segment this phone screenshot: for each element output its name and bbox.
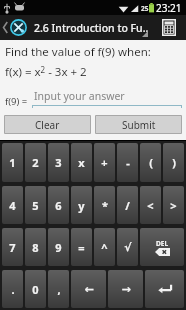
- button[interactable]: >: [163, 186, 184, 224]
- staticText: f(x) = x2 - 3x + 2: [5, 64, 87, 80]
- staticText: ,: [57, 282, 61, 297]
- button[interactable]: 0: [25, 270, 46, 308]
- button[interactable]: ←: [71, 270, 106, 308]
- staticText: ←: [84, 283, 94, 296]
- staticText: 2: [32, 155, 39, 170]
- staticText: *: [102, 198, 108, 213]
- button[interactable]: y: [71, 186, 92, 224]
- button[interactable]: .: [2, 270, 23, 308]
- staticText: /: [125, 198, 130, 213]
- button[interactable]: Submit: [96, 116, 181, 133]
- button[interactable]: 2.6 Introduction to Fu..: [30, 15, 152, 40]
- staticText: 25: [141, 4, 149, 13]
- button[interactable]: Delete: [140, 228, 184, 266]
- staticText: <: [147, 198, 154, 213]
- button[interactable]: →: [108, 270, 143, 308]
- staticText: 0: [32, 282, 39, 297]
- staticText: Input your answer: [34, 89, 125, 103]
- button[interactable]: -: [117, 143, 138, 182]
- button[interactable]: Clear: [5, 116, 90, 133]
- staticText: +: [101, 155, 108, 170]
- button[interactable]: /: [117, 186, 138, 224]
- button[interactable]: <: [140, 186, 161, 224]
- button[interactable]: 1: [2, 143, 23, 182]
- button[interactable]: +: [94, 143, 115, 182]
- staticText: Submit: [122, 118, 156, 132]
- staticText: 4: [9, 198, 16, 213]
- button[interactable]: 7: [2, 228, 23, 266]
- button[interactable]: ^: [94, 228, 115, 266]
- button[interactable]: 5: [25, 186, 46, 224]
- button[interactable]: 2: [25, 143, 46, 182]
- staticText: y: [78, 198, 85, 213]
- staticText: Find the value of f(9) when:: [5, 44, 151, 60]
- button[interactable]: (: [140, 143, 161, 182]
- staticText: -: [126, 155, 130, 170]
- button[interactable]: 6: [48, 186, 69, 224]
- staticText: (: [149, 155, 153, 170]
- staticText: f(9) =: [5, 95, 28, 108]
- staticText: 1: [9, 155, 16, 170]
- staticText: x: [78, 155, 85, 170]
- button[interactable]: Enter: [145, 270, 184, 308]
- staticText: →: [121, 283, 131, 296]
- button[interactable]: √: [117, 228, 138, 266]
- staticText: 2.6 Introduction to Fu..: [34, 21, 149, 35]
- button[interactable]: Up: [0, 15, 30, 40]
- button[interactable]: ,: [48, 270, 69, 308]
- button[interactable]: Calculator: [152, 15, 186, 40]
- staticText: .: [11, 282, 15, 297]
- button[interactable]: 8: [25, 228, 46, 266]
- staticText: >: [170, 198, 177, 213]
- staticText: DEL: [156, 239, 169, 248]
- button[interactable]: Input your answer: [32, 89, 182, 108]
- button[interactable]: 3: [48, 143, 69, 182]
- button[interactable]: x: [71, 143, 92, 182]
- staticText: 5: [32, 198, 39, 213]
- staticText: 23:21: [156, 1, 182, 15]
- staticText: Clear: [35, 118, 60, 132]
- staticText: 6: [55, 198, 62, 213]
- staticText: 3: [55, 155, 62, 170]
- staticText: 8: [32, 240, 39, 255]
- staticText: ^: [101, 240, 108, 255]
- staticText: 9: [55, 240, 62, 255]
- staticText: =: [78, 240, 85, 255]
- button[interactable]: 4: [2, 186, 23, 224]
- staticText: 7: [9, 240, 16, 255]
- button[interactable]: =: [71, 228, 92, 266]
- button[interactable]: *: [94, 186, 115, 224]
- button[interactable]: 9: [48, 228, 69, 266]
- staticText: ): [172, 155, 176, 170]
- staticText: √: [124, 241, 132, 254]
- button[interactable]: ): [163, 143, 184, 182]
